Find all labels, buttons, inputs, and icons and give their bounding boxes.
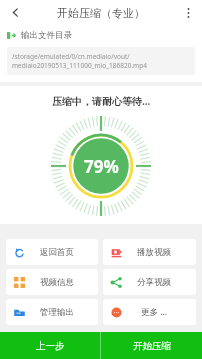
staticText: 输出文件目录 xyxy=(21,30,72,41)
button[interactable]: 上一步 xyxy=(0,332,100,359)
staticText: 播放视频 xyxy=(137,247,171,258)
staticText: /storage/emulated/0/cn.mediaio/vout/ med… xyxy=(12,52,147,70)
staticText: 管理输出 xyxy=(40,307,74,318)
staticText: 视频信息 xyxy=(40,277,74,288)
staticText: 79% xyxy=(84,155,119,178)
staticText: 更多 ... xyxy=(141,306,168,318)
staticText: 开始压缩 xyxy=(133,340,171,352)
button[interactable]: /storage/emulated/0/cn.mediaio/vout/ med… xyxy=(7,47,195,75)
button[interactable]: Back xyxy=(0,0,30,25)
button[interactable]: 返回首页 xyxy=(6,239,98,265)
staticText: 返回首页 xyxy=(40,247,74,258)
button[interactable]: 管理输出 xyxy=(6,299,98,325)
staticText: 上一步 xyxy=(36,340,65,352)
button[interactable]: More options xyxy=(174,0,202,25)
staticText: 分享视频 xyxy=(137,277,171,288)
button[interactable]: 视频信息 xyxy=(6,269,98,295)
staticText: 开始压缩（专业） xyxy=(57,6,145,20)
button[interactable]: 开始压缩 xyxy=(101,332,202,359)
staticText: 压缩中，请耐心等待... xyxy=(52,94,151,108)
button[interactable]: 播放视频 xyxy=(103,239,196,265)
button[interactable]: 更多 ... xyxy=(103,299,196,325)
button[interactable]: 分享视频 xyxy=(103,269,196,295)
